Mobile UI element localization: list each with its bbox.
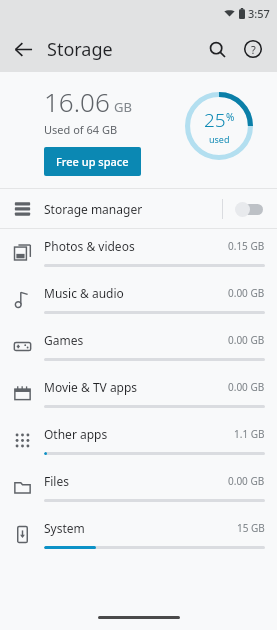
staticText: Storage manager [44,201,143,217]
staticText: Used of 64 GB [44,122,118,137]
button[interactable]: Files [0,464,277,511]
staticText: used [209,133,230,145]
button[interactable]: Search [199,31,235,67]
staticText: Photos & videos [44,238,222,254]
staticText: 0.00 GB [228,474,265,488]
staticText: System [44,520,231,536]
staticText: Files [44,473,222,489]
button[interactable]: System [0,511,277,558]
staticText: 0.00 GB [228,333,265,347]
staticText: 16.06 [44,84,110,119]
staticText: Free up space [56,154,129,169]
button[interactable]: Movie & TV apps [0,370,277,417]
staticText: 25 [204,107,226,133]
staticText: Music & audio [44,285,222,301]
staticText: 0.00 GB [228,380,265,394]
staticText: Storage [47,37,113,62]
staticText: Movie & TV apps [44,379,222,395]
button[interactable]: Storage manager toggle [235,197,265,221]
button[interactable]: Other apps [0,417,277,464]
staticText: % [226,110,235,124]
button[interactable]: Music & audio [0,276,277,323]
button[interactable]: Games [0,323,277,370]
staticText: Other apps [44,426,228,442]
button[interactable]: Back [6,32,40,66]
staticText: GB [114,98,132,116]
button[interactable]: Storage manager [0,189,277,228]
button[interactable]: Free up space [44,147,141,176]
staticText: 0.00 GB [228,286,265,300]
button[interactable]: Help [235,31,271,67]
staticText: 0.15 GB [228,239,265,253]
staticText: 1.1 GB [234,427,265,441]
staticText: 15 GB [237,521,265,535]
button[interactable]: Photos & videos [0,229,277,276]
staticText: 3:57 [248,6,270,21]
staticText: Games [44,332,222,348]
staticText: ? [251,42,256,57]
